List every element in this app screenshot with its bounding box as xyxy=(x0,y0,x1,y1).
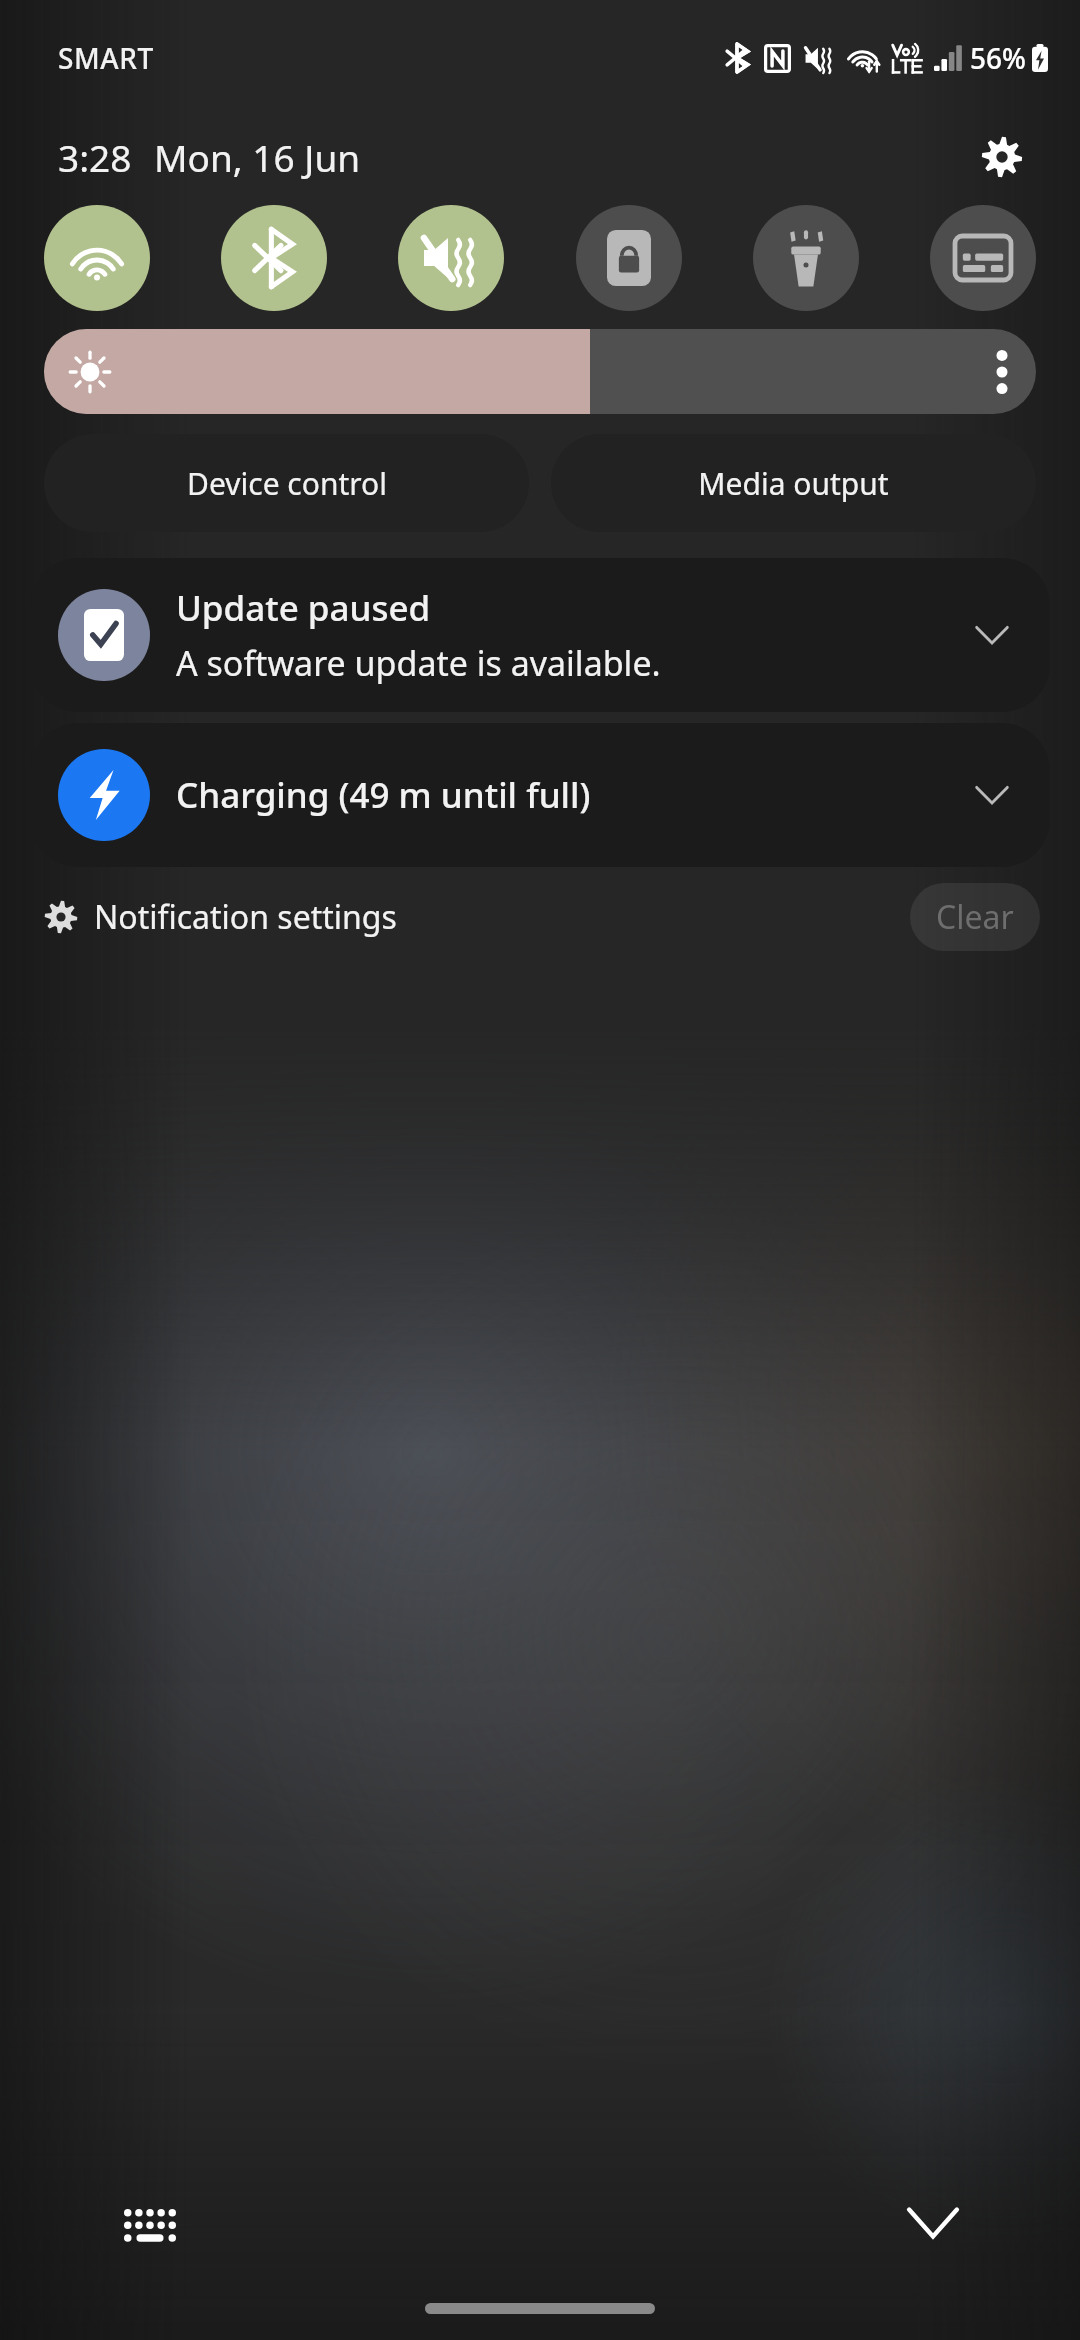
staticText: 56% xyxy=(970,39,1026,77)
staticText: Clear xyxy=(936,895,1014,939)
button[interactable]: Wi-Fi xyxy=(44,205,150,311)
button[interactable]: Settings xyxy=(968,123,1036,191)
button[interactable]: Keyboard xyxy=(112,2188,188,2264)
button[interactable]: Notification settings xyxy=(44,895,397,939)
staticText: A software update is available. xyxy=(176,640,661,686)
staticText: Media output xyxy=(698,463,889,504)
button[interactable]: Flashlight xyxy=(753,205,859,311)
button[interactable]: Expand xyxy=(960,603,1024,667)
button[interactable]: Media output xyxy=(551,434,1036,532)
staticText: Notification settings xyxy=(94,895,397,939)
button[interactable]: Bluetooth xyxy=(221,205,327,311)
button[interactable]: Device control xyxy=(44,434,529,532)
staticText: Charging (49 m until full) xyxy=(176,771,591,819)
button[interactable]: Charging (49 m until full) xyxy=(30,723,1050,867)
button[interactable]: Sound mode: vibrate xyxy=(398,205,504,311)
staticText: Mon, 16 Jun xyxy=(154,132,361,182)
button[interactable]: Auto rotate lock xyxy=(576,205,682,311)
button[interactable]: Collapse xyxy=(890,2180,976,2266)
staticText: Update paused xyxy=(176,584,431,632)
staticText: 3:28 xyxy=(58,132,132,182)
staticText: Device control xyxy=(187,463,387,504)
button[interactable]: Expand xyxy=(960,763,1024,827)
button[interactable]: Update paused xyxy=(30,558,1050,712)
button[interactable]: Clear xyxy=(910,883,1040,951)
button[interactable]: Live caption xyxy=(930,205,1036,311)
staticText: SMART xyxy=(58,39,154,77)
button[interactable]: Brightness xyxy=(44,329,1036,414)
